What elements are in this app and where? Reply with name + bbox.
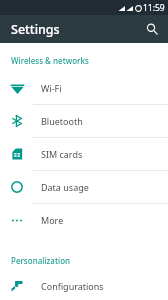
button[interactable]: Data usage xyxy=(0,171,168,203)
staticText: Personalization xyxy=(11,255,71,266)
staticText: More xyxy=(41,214,64,226)
staticText: SIM cards xyxy=(41,148,83,160)
button[interactable]: Configurations xyxy=(0,272,168,300)
staticText: Bluetooth xyxy=(41,115,83,127)
button[interactable]: Search xyxy=(141,18,163,40)
staticText: 11:59 xyxy=(143,2,165,14)
button[interactable]: More xyxy=(0,204,168,236)
button[interactable]: SIM cards xyxy=(0,138,168,170)
staticText: Wi-Fi xyxy=(41,82,62,94)
button[interactable]: Bluetooth xyxy=(0,105,168,137)
button[interactable]: Wi-Fi xyxy=(0,72,168,104)
staticText: Settings xyxy=(11,21,60,38)
staticText: Wireless & networks xyxy=(11,55,89,66)
staticText: Data usage xyxy=(41,181,89,193)
staticText: Configurations xyxy=(41,280,104,292)
